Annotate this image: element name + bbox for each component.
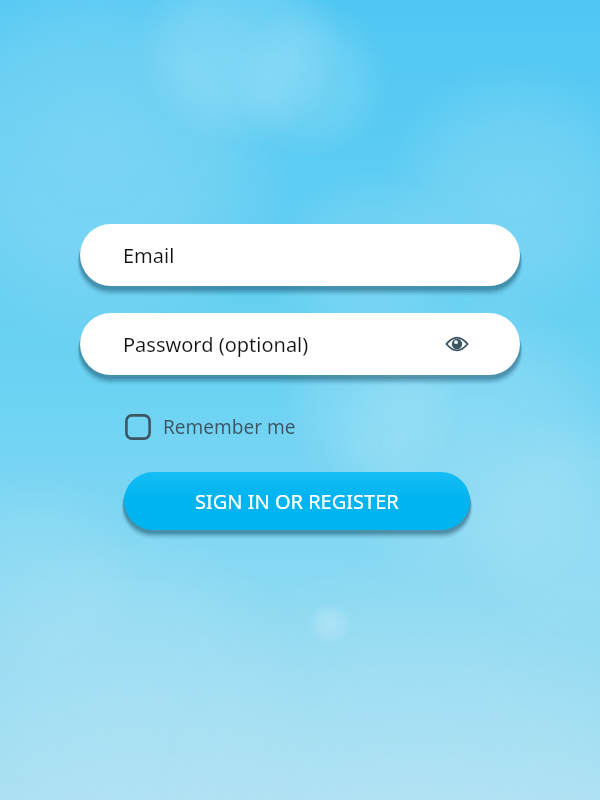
staticText: Remember me — [163, 414, 296, 440]
button[interactable]: Email — [80, 224, 520, 286]
staticText: SIGN IN OR REGISTER — [195, 488, 399, 515]
button[interactable]: Show password — [442, 329, 472, 359]
staticText: Password (optional) — [123, 331, 309, 358]
button[interactable]: Remember me — [123, 410, 298, 444]
button[interactable]: SIGN IN OR REGISTER — [124, 472, 470, 530]
staticText: Email — [123, 242, 175, 269]
button[interactable]: Password (optional) — [80, 313, 520, 375]
